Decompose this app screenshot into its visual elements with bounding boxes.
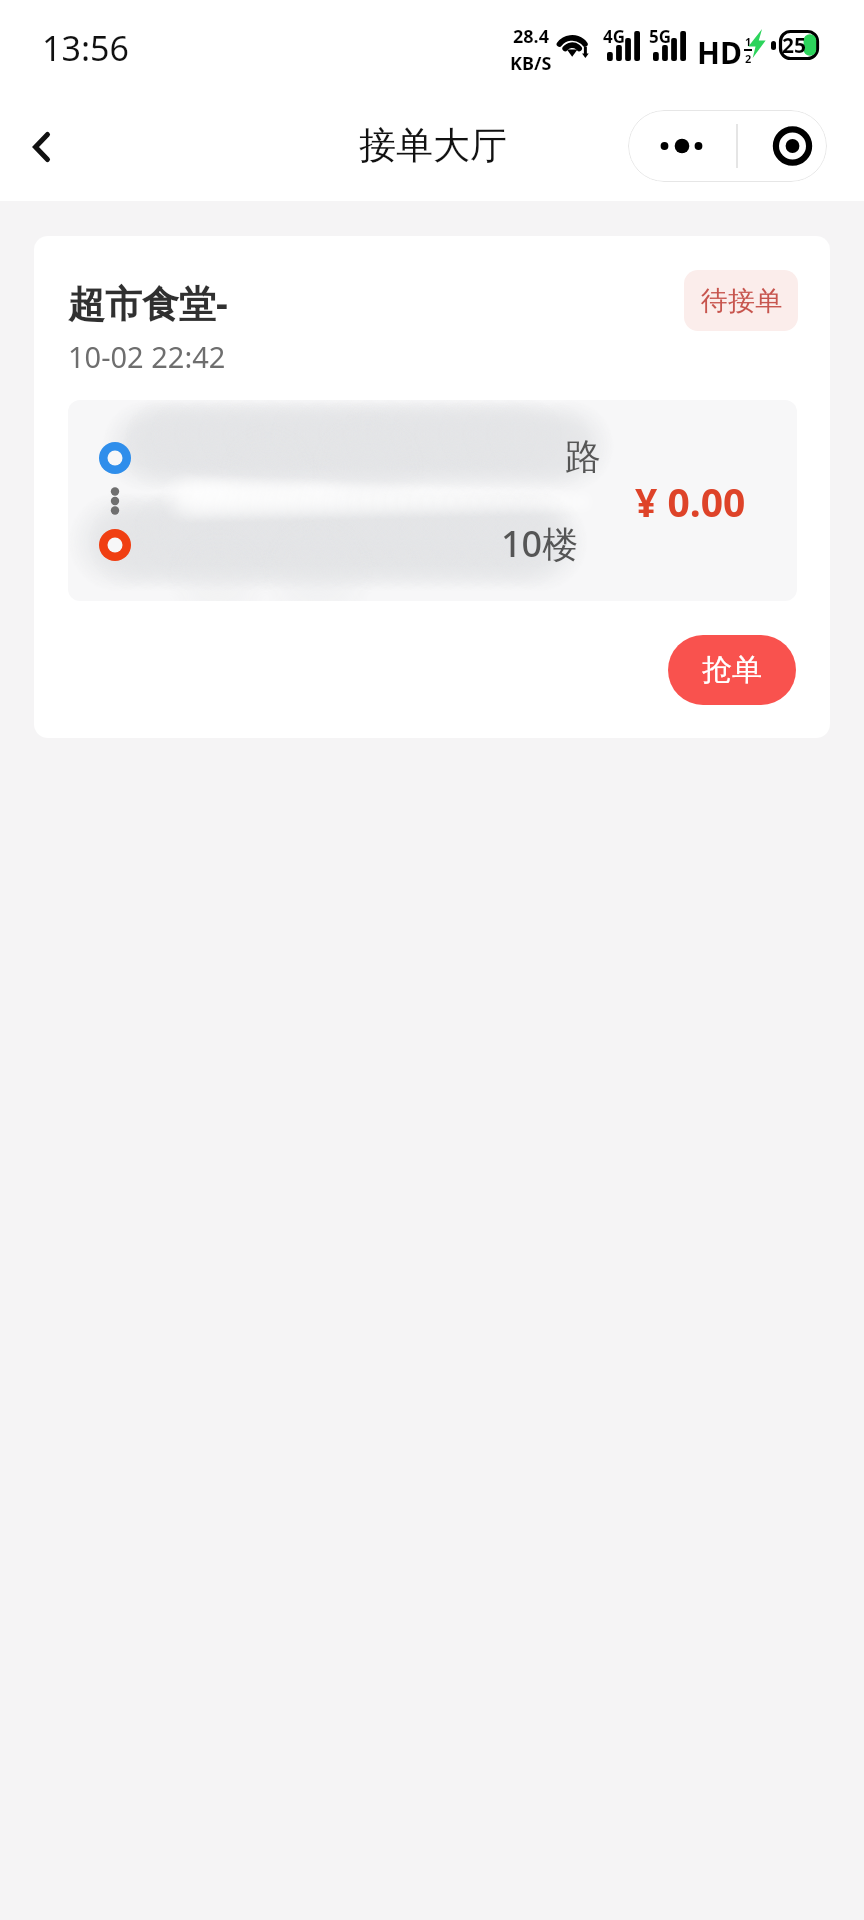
button[interactable]: 抢单 bbox=[668, 635, 796, 705]
staticText: ¥ 0.00 bbox=[635, 475, 746, 528]
button[interactable]: 待接单 bbox=[684, 270, 798, 331]
staticText: 抢单 bbox=[702, 651, 762, 689]
staticText: 10-02 22:42 bbox=[68, 337, 226, 376]
button[interactable]: 超市食堂- bbox=[34, 236, 830, 738]
staticText: 超市食堂- bbox=[68, 277, 228, 328]
staticText: 10楼 bbox=[501, 519, 579, 568]
staticText: 28.4 bbox=[513, 24, 549, 49]
staticText: 待接单 bbox=[701, 284, 782, 318]
staticText: 13:56 bbox=[42, 25, 129, 71]
staticText: 路 bbox=[565, 434, 601, 479]
button[interactable]: Close mini program bbox=[738, 110, 827, 182]
staticText: 1 bbox=[745, 34, 752, 49]
button[interactable]: Back bbox=[9, 115, 73, 179]
staticText: 25 bbox=[782, 31, 807, 60]
staticText: 4G bbox=[603, 25, 626, 48]
staticText: 2 bbox=[745, 51, 752, 66]
button[interactable]: More options bbox=[628, 110, 827, 182]
staticText: 5G bbox=[649, 25, 672, 48]
staticText: HD bbox=[697, 32, 742, 73]
staticText: 接单大厅 bbox=[359, 122, 507, 169]
staticText: KB/S bbox=[510, 51, 552, 76]
